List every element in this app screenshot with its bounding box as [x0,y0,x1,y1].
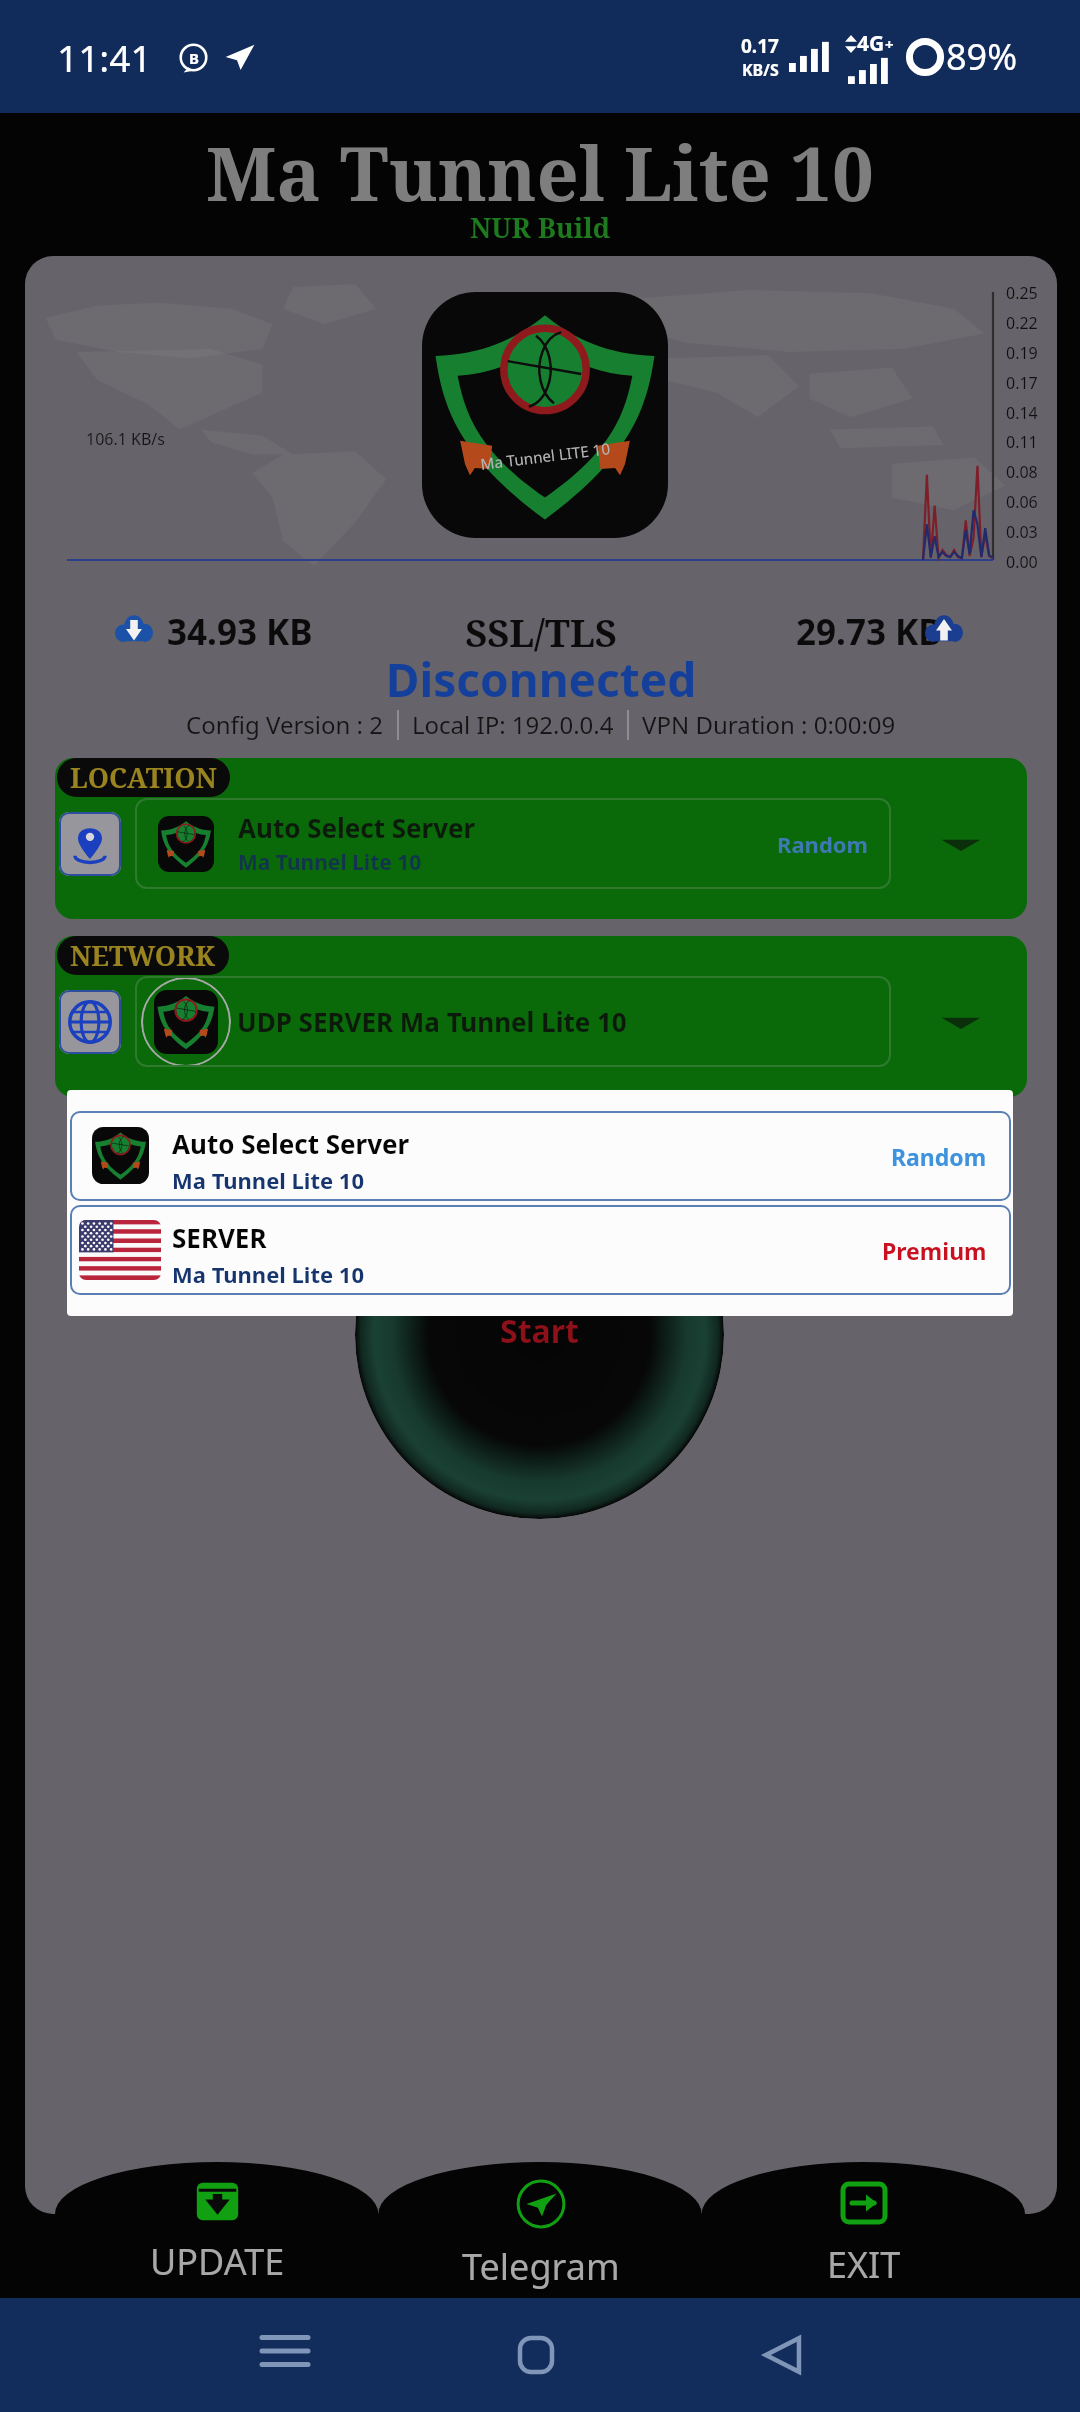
button[interactable]: Expand network [939,1013,983,1039]
staticText: 0.22 [1006,312,1038,334]
staticText: Telegram [462,2242,620,2291]
staticText: 11:41 [57,32,152,82]
other: Update [194,2178,241,2225]
staticText: Random [777,829,869,859]
staticText: 34.93 KB [167,608,313,656]
staticText: SERVER [172,1220,267,1255]
staticText: 29.73 KB [796,608,942,656]
staticText: 4G [857,29,885,58]
button[interactable]: Auto Select Server [55,758,1027,919]
staticText: Ma Tunnel Lite 10 [238,848,422,877]
other: Telegram [515,2178,567,2230]
button[interactable]: Start [355,1150,724,1519]
button[interactable]: Exit [702,2162,1025,2298]
staticText: UPDATE [150,2237,285,2286]
button[interactable]: Update [55,2162,379,2298]
staticText: Ma Tunnel Lite 10 [206,122,874,223]
button[interactable]: Auto Select Server [70,1111,1011,1201]
button[interactable]: Telegram [379,2162,702,2298]
staticText: Ma Tunnel LITE 10 [479,438,612,475]
staticText: NETWORK [70,937,216,974]
staticText: EXIT [827,2240,901,2289]
staticText: 0.17 [1006,372,1038,394]
staticText: Auto Select Server [172,1126,410,1161]
button[interactable]: Recents [262,2334,308,2368]
button[interactable]: SERVER [70,1205,1011,1295]
staticText: 0.00 [1006,551,1038,573]
staticText: + [885,34,894,54]
staticText: 0.19 [1006,342,1038,364]
button[interactable]: Back [764,2336,802,2374]
staticText: KB/S [742,59,779,81]
other: Exit [839,2178,889,2228]
staticText: 0.14 [1006,402,1038,424]
staticText: 89% [946,32,1018,81]
staticText: 0.08 [1006,461,1038,483]
staticText: VPN Duration : 0:00:09 [642,708,896,741]
staticText: 106.1 KB/s [86,428,165,450]
staticText: SSL/TLS [25,606,1057,658]
staticText: 0.06 [1006,491,1038,513]
staticText: NUR Build [470,209,611,246]
staticText: LOCATION [70,759,217,796]
staticText: Premium [882,1235,987,1266]
staticText: Ma Tunnel Lite 10 [172,1165,364,1195]
staticText: Random [891,1141,987,1172]
staticText: 0.17 [741,33,779,59]
button[interactable]: UDP SERVER Ma Tunnel Lite 10 [55,936,1027,1097]
staticText: 0.25 [1006,282,1038,304]
staticText: Local IP: 192.0.0.4 [412,708,614,741]
button[interactable]: Expand location [939,835,983,861]
staticText: Disconnected [25,648,1057,711]
button[interactable]: Home [518,2336,554,2374]
staticText: Auto Select Server [238,810,476,845]
staticText: B [189,48,199,68]
staticText: Start [500,1309,579,1353]
staticText: Ma Tunnel Lite 10 [172,1259,364,1289]
staticText: 0.11 [1006,431,1038,453]
staticText: UDP SERVER Ma Tunnel Lite 10 [237,1004,627,1039]
staticText: 0.03 [1006,521,1038,543]
staticText: Config Version : 2 [186,708,384,741]
